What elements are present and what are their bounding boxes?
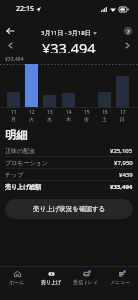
staticText: ? bbox=[127, 28, 130, 35]
staticText: ¥33,494 bbox=[5, 56, 24, 63]
staticText: ¥25,105 bbox=[110, 147, 133, 155]
button[interactable]: ホーム bbox=[0, 267, 34, 300]
staticText: 日 bbox=[120, 116, 125, 122]
staticText: 正味の配金 bbox=[5, 147, 36, 155]
staticText: 明細 bbox=[5, 128, 27, 142]
staticText: 売り上げ状況を確認する bbox=[33, 205, 106, 213]
staticText: 11 bbox=[11, 109, 17, 116]
button[interactable]: Next week bbox=[122, 40, 133, 51]
button[interactable]: Help bbox=[120, 23, 136, 39]
button[interactable]: Previous week bbox=[5, 40, 16, 51]
button[interactable]: Back bbox=[2, 23, 18, 39]
staticText: 22:15 bbox=[16, 4, 34, 14]
staticText: ホーム bbox=[9, 279, 25, 285]
staticText: 14 bbox=[66, 109, 72, 116]
staticText: ¥33,494 bbox=[110, 183, 133, 191]
staticText: 13 bbox=[47, 109, 53, 116]
staticText: メニュー bbox=[110, 279, 131, 285]
staticText: 12 bbox=[29, 109, 35, 116]
staticText: ¥439 bbox=[119, 171, 133, 179]
staticText: プロモーション bbox=[5, 159, 48, 167]
button[interactable]: 受信トレイ bbox=[68, 267, 103, 300]
staticText: 16 bbox=[102, 109, 108, 116]
staticText: 売り上げ総額 bbox=[5, 183, 42, 191]
button[interactable]: メニュー bbox=[103, 267, 138, 300]
staticText: チップ bbox=[5, 171, 24, 179]
button[interactable]: 売り上げ状況を確認する bbox=[5, 199, 133, 219]
staticText: 17 bbox=[120, 109, 126, 116]
staticText: 月 bbox=[11, 116, 16, 122]
staticText: 水 bbox=[47, 116, 52, 122]
staticText: 3月11日 - 3月18日 bbox=[41, 29, 91, 37]
staticText: 土 bbox=[102, 116, 107, 122]
staticText: 火 bbox=[29, 116, 34, 122]
staticText: 15 bbox=[84, 109, 90, 116]
staticText: 売り上げ bbox=[41, 279, 62, 285]
staticText: 金 bbox=[84, 116, 89, 122]
staticText: 木 bbox=[66, 116, 71, 122]
staticText: ¥7,950 bbox=[114, 159, 133, 167]
staticText: 受信トレイ bbox=[73, 279, 99, 285]
staticText: ¥33,494 bbox=[42, 38, 96, 53]
button[interactable]: 3月11日 - 3月18日 bbox=[41, 29, 97, 37]
button[interactable]: 売り上げ bbox=[34, 267, 68, 300]
